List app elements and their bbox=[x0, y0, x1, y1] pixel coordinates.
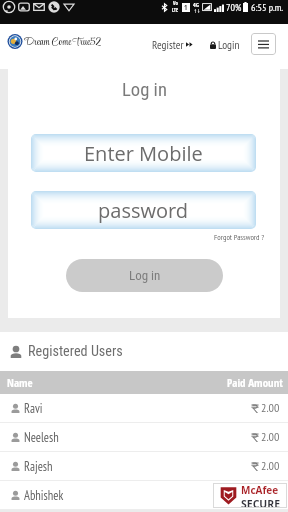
button[interactable]: Register bbox=[152, 37, 193, 52]
button[interactable]: McAfee Secure bbox=[213, 483, 287, 508]
staticText: SECURE bbox=[241, 497, 281, 508]
button[interactable]: Log in bbox=[66, 259, 223, 292]
staticText: Log in bbox=[122, 79, 167, 101]
button[interactable]: Forgot Password ? bbox=[214, 232, 265, 242]
staticText: 2.00 bbox=[261, 429, 280, 445]
staticText: 2.00 bbox=[261, 400, 280, 416]
staticText: Rajesh bbox=[24, 458, 53, 474]
staticText: Paid Amount bbox=[227, 375, 283, 390]
button[interactable]: Ravi bbox=[11, 394, 280, 422]
staticText: Dream Come True52 bbox=[24, 34, 102, 51]
staticText: Vo bbox=[173, 0, 178, 7]
staticText: 70% bbox=[226, 1, 242, 14]
staticText: Registered Users bbox=[28, 343, 123, 360]
button[interactable]: Login bbox=[210, 37, 240, 52]
button[interactable]: Neelesh bbox=[11, 423, 280, 451]
button[interactable]: Rajesh bbox=[11, 452, 280, 480]
staticText: Neelesh bbox=[24, 429, 59, 445]
button[interactable]: password bbox=[31, 191, 256, 229]
staticText: Enter Mobile bbox=[84, 140, 203, 167]
staticText: Name bbox=[7, 375, 33, 390]
button[interactable]: Enter Mobile bbox=[31, 134, 256, 172]
staticText: 4G bbox=[193, 1, 200, 9]
button[interactable]: Open navigation menu bbox=[251, 33, 276, 55]
staticText: Ravi bbox=[24, 400, 43, 416]
staticText: 2.00 bbox=[261, 487, 280, 503]
staticText: 6:55 p.m. bbox=[251, 1, 284, 14]
staticText: Abhishek bbox=[24, 487, 64, 503]
staticText: Login bbox=[218, 37, 240, 52]
button[interactable]: Abhishek bbox=[11, 481, 280, 509]
staticText: 1 bbox=[184, 3, 188, 12]
staticText: 2.00 bbox=[261, 458, 280, 474]
staticText: LTE bbox=[172, 7, 179, 14]
staticText: McAfee bbox=[241, 483, 279, 497]
staticText: Register bbox=[152, 37, 184, 52]
button[interactable]: Dream Come True52 home bbox=[7, 36, 102, 53]
staticText: Log in bbox=[129, 268, 161, 283]
staticText: password bbox=[98, 197, 189, 224]
